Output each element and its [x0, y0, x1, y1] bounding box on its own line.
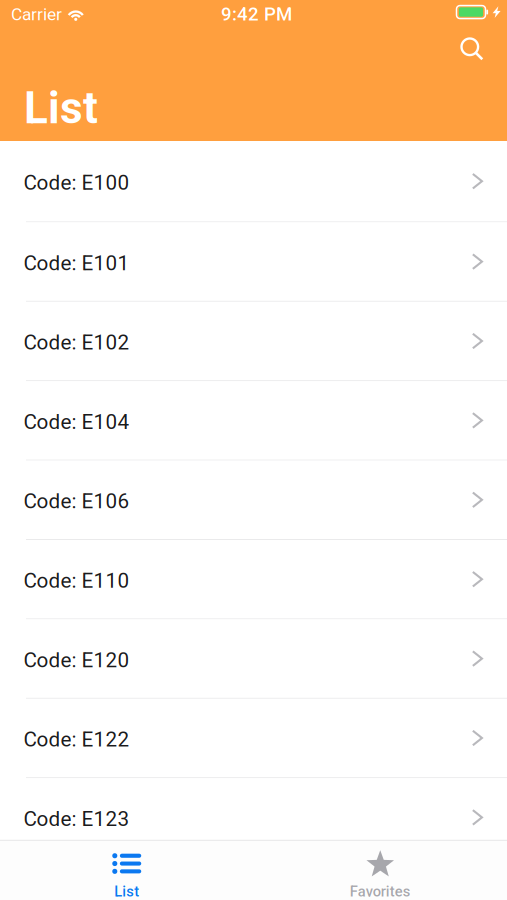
button[interactable]: Code: E110 [0, 540, 507, 619]
button[interactable]: Favorites [253, 841, 507, 900]
staticText: Code: E124 [23, 886, 129, 900]
button[interactable]: Code: E104 [0, 381, 507, 461]
staticText: Code: E122 [23, 727, 129, 752]
button[interactable]: Code: E123 [0, 778, 507, 858]
staticText: Code: E100 [23, 171, 129, 195]
staticText: Code: E106 [23, 489, 129, 513]
button[interactable]: Code: E120 [0, 619, 507, 699]
staticText: Carrier [11, 4, 62, 24]
staticText: Code: E123 [23, 807, 129, 831]
button[interactable]: Search [451, 32, 495, 68]
staticText: 9:42 PM [221, 3, 292, 25]
button[interactable]: Code: E102 [0, 302, 507, 381]
button[interactable]: Code: E106 [0, 461, 507, 540]
staticText: Code: E102 [23, 330, 129, 355]
staticText: List [114, 883, 139, 900]
button[interactable]: Code: E101 [0, 222, 507, 302]
staticText: Code: E110 [23, 569, 129, 593]
button[interactable]: Code: E124 [0, 858, 507, 900]
button[interactable]: Code: E122 [0, 699, 507, 778]
staticText: Code: E120 [23, 648, 129, 672]
staticText: Code: E104 [23, 410, 129, 434]
staticText: List [24, 82, 98, 134]
button[interactable]: Code: E100 [0, 141, 507, 222]
staticText: Code: E101 [23, 251, 129, 275]
button[interactable]: List [0, 841, 253, 900]
staticText: Favorites [350, 883, 411, 900]
